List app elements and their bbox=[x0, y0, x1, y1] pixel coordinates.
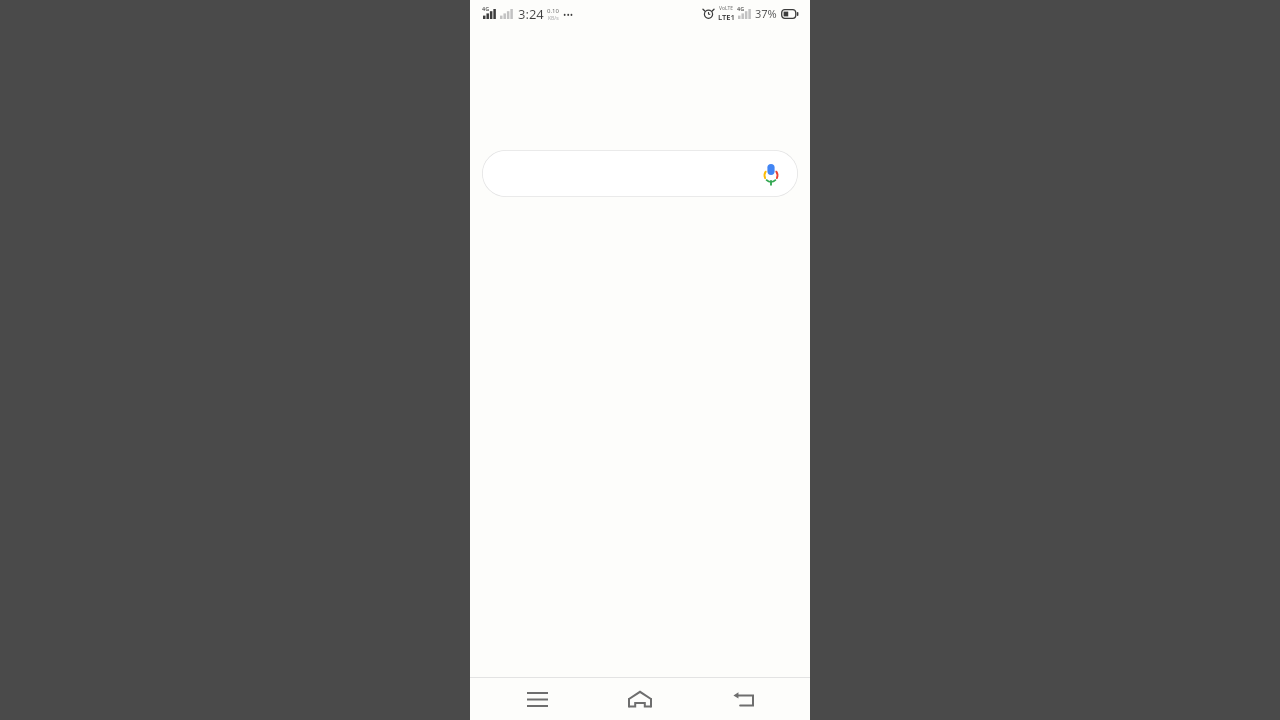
button[interactable]: Back bbox=[707, 678, 779, 720]
button[interactable]: Recent apps bbox=[501, 678, 573, 720]
button[interactable]: Home bbox=[604, 678, 676, 720]
staticText: 3:24 bbox=[518, 5, 544, 23]
staticText: 37% bbox=[755, 6, 777, 21]
button[interactable]: Voice search bbox=[757, 160, 785, 188]
staticText: 0.10 bbox=[547, 7, 559, 15]
staticText: ••• bbox=[563, 8, 574, 20]
button[interactable]: Voice search bbox=[482, 150, 798, 197]
staticText: 4G bbox=[737, 5, 745, 12]
staticText: LTE1 bbox=[718, 12, 735, 22]
staticText: KB/s bbox=[548, 15, 559, 22]
staticText: VoLTE bbox=[719, 5, 734, 12]
staticText: 4G bbox=[482, 5, 490, 12]
